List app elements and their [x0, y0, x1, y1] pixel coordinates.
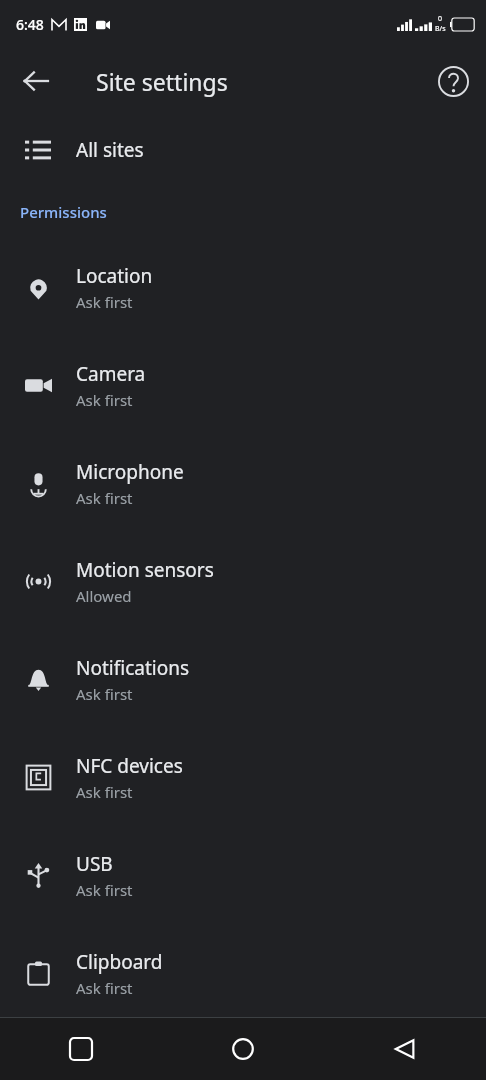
staticText: Ask first: [76, 684, 133, 704]
staticText: Clipboard: [76, 949, 163, 975]
staticText: 6:48: [16, 15, 44, 34]
staticText: Ask first: [76, 978, 133, 998]
button[interactable]: Home: [162, 1018, 324, 1080]
button[interactable]: Clipboard: [0, 924, 486, 1022]
staticText: Site settings: [96, 66, 228, 97]
button[interactable]: Back: [8, 53, 64, 109]
button[interactable]: Motion sensors: [0, 532, 486, 630]
staticText: Ask first: [76, 782, 133, 802]
staticText: 0: [438, 14, 443, 24]
staticText: Location: [76, 263, 153, 289]
staticText: Microphone: [76, 459, 184, 485]
button[interactable]: Recents: [0, 1018, 162, 1080]
button[interactable]: All sites: [0, 114, 486, 186]
button[interactable]: USB: [0, 826, 486, 924]
staticText: Ask first: [76, 390, 133, 410]
button[interactable]: Help: [427, 55, 479, 107]
button[interactable]: Microphone: [0, 434, 486, 532]
staticText: B/s: [435, 24, 446, 34]
staticText: USB: [76, 851, 113, 877]
button[interactable]: Location: [0, 238, 486, 336]
staticText: Notifications: [76, 655, 190, 681]
button[interactable]: NFC devices: [0, 728, 486, 826]
button[interactable]: Notifications: [0, 630, 486, 728]
staticText: All sites: [76, 137, 144, 163]
button[interactable]: Camera: [0, 336, 486, 434]
staticText: Allowed: [76, 586, 132, 606]
staticText: Ask first: [76, 880, 133, 900]
staticText: Camera: [76, 361, 146, 387]
staticText: NFC devices: [76, 753, 183, 779]
staticText: Permissions: [20, 202, 107, 222]
staticText: Ask first: [76, 488, 133, 508]
staticText: Motion sensors: [76, 557, 214, 583]
button[interactable]: Back: [324, 1018, 486, 1080]
staticText: Ask first: [76, 292, 133, 312]
